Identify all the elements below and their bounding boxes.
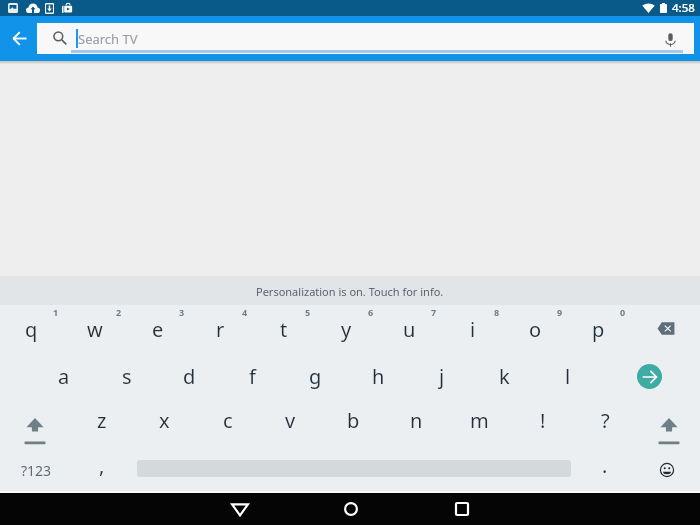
staticText: r — [216, 316, 225, 343]
button[interactable]: a — [32, 352, 95, 398]
button[interactable]: g — [284, 352, 347, 398]
staticText: 3 — [179, 306, 185, 318]
staticText: Personalization is on. Touch for info. — [256, 284, 444, 299]
staticText: f — [249, 363, 256, 390]
staticText: k — [499, 363, 510, 390]
button[interactable]: f — [221, 352, 284, 398]
staticText: w — [87, 316, 103, 343]
staticText: ? — [601, 407, 610, 434]
button[interactable]: p — [567, 305, 630, 352]
button[interactable]: z — [70, 398, 133, 445]
button[interactable]: Recents — [406, 493, 517, 525]
button[interactable]: b — [322, 398, 385, 445]
button[interactable]: Voice search — [657, 26, 683, 52]
staticText: c — [223, 407, 233, 434]
staticText: o — [529, 316, 542, 343]
button[interactable]: ? — [574, 398, 637, 445]
staticText: z — [97, 407, 107, 434]
button[interactable]: ?123 — [0, 445, 72, 489]
button[interactable]: Space — [132, 445, 576, 489]
staticText: l — [565, 363, 571, 390]
staticText: p — [592, 316, 605, 343]
button[interactable]: i — [441, 305, 504, 352]
staticText: q — [25, 316, 38, 343]
other: Search — [45, 23, 75, 53]
staticText: 8 — [494, 306, 500, 318]
staticText: 2 — [116, 306, 122, 318]
staticText: a — [58, 363, 70, 390]
staticText: n — [410, 407, 423, 434]
staticText: j — [439, 363, 445, 390]
button[interactable]: r — [189, 305, 252, 352]
button[interactable]: Backspace — [630, 305, 700, 352]
button[interactable]: Back — [0, 16, 37, 61]
staticText: 5 — [305, 306, 311, 318]
button[interactable]: Enter — [599, 352, 700, 398]
button[interactable]: h — [347, 352, 410, 398]
button[interactable]: e — [126, 305, 189, 352]
button[interactable]: Back — [184, 493, 295, 525]
button[interactable]: Emoji — [634, 445, 700, 489]
staticText: b — [347, 407, 360, 434]
button[interactable]: q — [0, 305, 63, 352]
button[interactable]: , — [72, 445, 132, 489]
staticText: y — [341, 316, 352, 343]
staticText: e — [152, 316, 164, 343]
staticText: v — [285, 407, 296, 434]
staticText: ! — [540, 407, 546, 434]
staticText: h — [372, 363, 385, 390]
staticText: 0 — [620, 306, 626, 318]
staticText: g — [309, 363, 322, 390]
button[interactable]: Personalization is on. Touch for info. — [0, 276, 700, 305]
staticText: x — [159, 407, 170, 434]
button[interactable]: u — [378, 305, 441, 352]
staticText: s — [122, 363, 132, 390]
button[interactable]: x — [133, 398, 196, 445]
staticText: 6 — [368, 306, 374, 318]
button[interactable]: Shift — [0, 398, 70, 445]
staticText: t — [280, 316, 288, 343]
button[interactable]: j — [410, 352, 473, 398]
staticText: 7 — [431, 306, 437, 318]
staticText: Search TV — [78, 30, 138, 48]
staticText: u — [403, 316, 416, 343]
button[interactable]: Search — [37, 23, 694, 54]
button[interactable]: l — [536, 352, 599, 398]
staticText: i — [470, 316, 476, 343]
button[interactable]: o — [504, 305, 567, 352]
button[interactable]: y — [315, 305, 378, 352]
button[interactable]: n — [385, 398, 448, 445]
staticText: . — [602, 452, 608, 479]
staticText: d — [183, 363, 196, 390]
button[interactable]: v — [259, 398, 322, 445]
staticText: 4:58 — [672, 0, 695, 16]
button[interactable]: Home — [295, 493, 406, 525]
staticText: 4 — [242, 306, 248, 318]
button[interactable]: k — [473, 352, 536, 398]
button[interactable]: s — [95, 352, 158, 398]
button[interactable]: w — [63, 305, 126, 352]
button[interactable]: c — [196, 398, 259, 445]
staticText: , — [99, 452, 105, 479]
staticText: m — [470, 407, 489, 434]
button[interactable]: m — [448, 398, 511, 445]
button[interactable]: d — [158, 352, 221, 398]
button[interactable]: ! — [511, 398, 574, 445]
button[interactable]: Shift — [637, 398, 700, 445]
staticText: 9 — [557, 306, 563, 318]
button[interactable]: . — [576, 445, 634, 489]
staticText: 1 — [53, 306, 59, 318]
button[interactable]: t — [252, 305, 315, 352]
staticText: ?123 — [21, 461, 52, 480]
